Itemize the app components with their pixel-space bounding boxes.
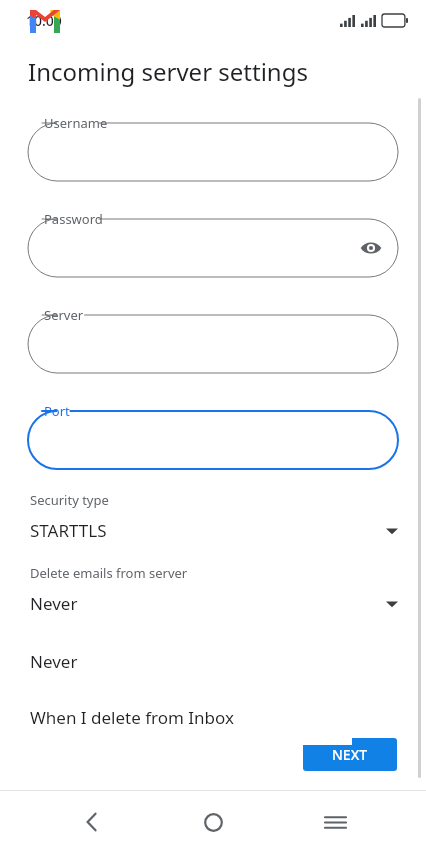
- button[interactable]: Security type: [0, 491, 426, 542]
- staticText: Port: [44, 402, 70, 420]
- staticText: Server: [44, 306, 84, 324]
- button[interactable]: Home: [183, 792, 243, 852]
- button[interactable]: Delete emails from server: [0, 564, 426, 615]
- staticText: Password: [44, 210, 103, 228]
- staticText: Never: [30, 650, 78, 673]
- button[interactable]: Port: [0, 401, 426, 469]
- button[interactable]: Server: [0, 305, 426, 373]
- button[interactable]: Back: [62, 792, 122, 852]
- staticText: Username: [44, 114, 108, 132]
- button[interactable]: Show password: [356, 233, 386, 263]
- button[interactable]: Never: [18, 634, 352, 689]
- staticText: Security type: [30, 491, 109, 509]
- staticText: When I delete from Inbox: [30, 706, 234, 729]
- staticText: Delete emails from server: [30, 564, 188, 582]
- button[interactable]: Username: [0, 113, 426, 181]
- button[interactable]: Recent apps: [305, 792, 365, 852]
- button[interactable]: Password: [0, 209, 426, 277]
- staticText: Never: [30, 592, 386, 615]
- staticText: Incoming server settings: [28, 55, 308, 88]
- staticText: STARTTLS: [30, 519, 386, 542]
- button[interactable]: When I delete from Inbox: [18, 689, 352, 745]
- staticText: NEXT: [332, 745, 368, 764]
- button[interactable]: NEXT: [303, 738, 397, 771]
- staticText: 10:00: [26, 11, 62, 30]
